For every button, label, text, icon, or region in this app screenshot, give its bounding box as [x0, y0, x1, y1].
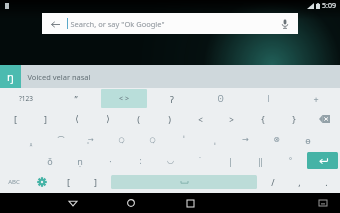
staticText: ,	[298, 176, 301, 188]
button[interactable]: Backspace	[309, 109, 340, 129]
staticText: ʔ	[170, 93, 174, 105]
staticText: .	[325, 176, 328, 188]
staticText: ǒ	[47, 155, 53, 167]
button[interactable]: ̥̯	[17, 130, 45, 149]
button[interactable]: ”	[53, 89, 99, 108]
button[interactable]: [	[1, 110, 29, 128]
button[interactable]: ɵ	[293, 130, 322, 149]
button[interactable]: < >	[101, 89, 147, 108]
staticText: →	[242, 135, 249, 144]
staticText: ˈ	[183, 134, 185, 145]
staticText: ⊗	[273, 135, 280, 144]
staticText: ṇ	[77, 155, 83, 167]
button[interactable]: °	[276, 151, 304, 170]
staticText: ]	[94, 176, 97, 188]
button[interactable]: ]	[31, 110, 60, 128]
button[interactable]: ʔ	[149, 89, 195, 108]
button[interactable]: [	[55, 171, 82, 193]
staticText: ]	[44, 113, 47, 125]
button[interactable]: }	[279, 110, 308, 128]
button[interactable]: Back	[63, 193, 83, 213]
staticText: ⟩	[106, 114, 110, 124]
button[interactable]: Enter	[307, 152, 338, 169]
staticText: ǀ	[267, 93, 270, 104]
button[interactable]: ˌ	[200, 130, 229, 149]
staticText: ⟨	[75, 114, 79, 124]
button[interactable]: +	[293, 89, 339, 108]
staticText: (	[137, 113, 140, 125]
staticText: °	[289, 156, 292, 166]
button[interactable]: {	[248, 110, 277, 128]
button[interactable]: Recent apps	[180, 193, 200, 213]
staticText: Voiced velar nasal	[27, 72, 91, 82]
staticText: :	[139, 155, 142, 166]
button[interactable]: Space	[111, 175, 257, 189]
button[interactable]: :	[126, 151, 154, 170]
button[interactable]: ○̩	[138, 130, 167, 149]
button[interactable]: Switch keyboard	[316, 196, 330, 210]
staticText: ‖	[258, 155, 263, 167]
button[interactable]: ⟩	[93, 110, 122, 128]
staticText: ʘ	[217, 93, 224, 104]
button[interactable]: ŋ	[0, 65, 21, 88]
staticText: |	[228, 155, 233, 167]
staticText: ◡	[167, 156, 174, 165]
staticText: ·	[109, 155, 112, 167]
button[interactable]: ·	[96, 151, 124, 170]
button[interactable]: /	[259, 171, 286, 193]
button[interactable]: Back	[42, 13, 298, 34]
button[interactable]: ͡	[47, 130, 75, 149]
button[interactable]: ABC	[0, 171, 28, 193]
button[interactable]: .	[313, 171, 340, 193]
button[interactable]: >	[217, 110, 246, 128]
staticText: ɵ	[305, 134, 311, 146]
staticText: 5:09	[322, 1, 336, 11]
staticText: ○̩	[118, 136, 125, 144]
button[interactable]: ○̩	[107, 130, 136, 149]
button[interactable]: →	[231, 130, 260, 149]
staticText: ABC	[8, 178, 20, 186]
button[interactable]: <	[186, 110, 215, 128]
staticText: Search, or say "Ok Google"	[70, 19, 165, 29]
button[interactable]: ?123	[1, 89, 51, 108]
button[interactable]: ʘ	[197, 89, 243, 108]
button[interactable]: ,	[286, 171, 313, 193]
button[interactable]: |	[216, 151, 244, 170]
button[interactable]: ]	[82, 171, 109, 193]
staticText: ̥→	[88, 135, 94, 145]
staticText: ŋ	[7, 69, 14, 84]
button[interactable]: ̥→	[77, 130, 105, 149]
staticText: [	[14, 113, 17, 125]
staticText: < >	[119, 94, 129, 104]
button[interactable]: (	[124, 110, 153, 128]
button[interactable]: ◡	[156, 151, 184, 170]
staticText: ˌ	[214, 134, 216, 145]
button[interactable]: Back	[49, 18, 61, 30]
button[interactable]: ⊗	[262, 130, 291, 149]
staticText: <	[198, 114, 203, 125]
button[interactable]: ‖	[246, 151, 274, 170]
staticText: {	[261, 113, 265, 125]
staticText: ˙	[199, 155, 201, 166]
staticText: }	[292, 113, 296, 125]
staticText: +	[313, 93, 319, 105]
button[interactable]: Home	[121, 193, 141, 213]
staticText: )	[168, 113, 171, 125]
button[interactable]: Voice search	[279, 18, 291, 30]
staticText: ○̩	[149, 136, 156, 144]
button[interactable]: ⟨	[62, 110, 91, 128]
button[interactable]: Settings	[28, 171, 55, 193]
button[interactable]: ṇ	[66, 151, 94, 170]
button[interactable]: ǒ	[35, 151, 64, 170]
button[interactable]: ǀ	[245, 89, 291, 108]
button[interactable]: ˈ	[169, 130, 198, 149]
staticText: /	[271, 176, 275, 188]
button[interactable]: Voiced velar nasal	[27, 65, 340, 88]
staticText: ?123	[19, 94, 33, 103]
staticText: >	[229, 114, 234, 125]
button[interactable]: )	[155, 110, 184, 128]
